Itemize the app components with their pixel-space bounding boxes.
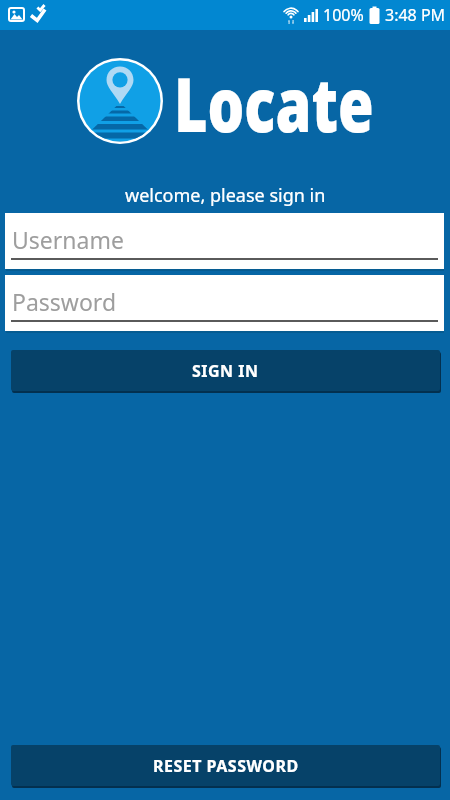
button[interactable]: SIGN IN xyxy=(11,350,440,391)
staticText: Username xyxy=(12,224,124,255)
staticText: Password xyxy=(12,286,117,317)
button[interactable]: Password xyxy=(5,275,444,331)
staticText: Locate xyxy=(174,53,374,154)
staticText: welcome, please sign in xyxy=(125,183,326,208)
staticText: 100% xyxy=(323,4,364,26)
staticText: RESET PASSWORD xyxy=(153,755,299,777)
staticText: SIGN IN xyxy=(192,360,259,382)
button[interactable]: RESET PASSWORD xyxy=(11,745,440,786)
button[interactable]: Username xyxy=(5,213,444,269)
staticText: 3:48 PM xyxy=(385,4,446,26)
